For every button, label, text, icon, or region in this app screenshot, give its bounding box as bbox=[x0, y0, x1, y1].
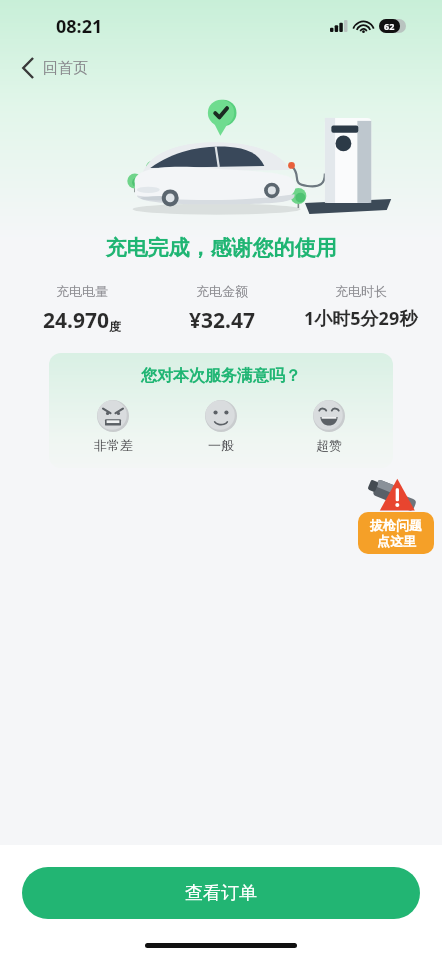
button[interactable]: 查看订单 bbox=[22, 867, 420, 919]
staticText: 08:21 bbox=[56, 14, 103, 39]
staticText: 查看订单 bbox=[185, 882, 257, 905]
staticText: 充电电量 bbox=[56, 283, 108, 299]
button[interactable]: 拔枪问题点这里 bbox=[358, 478, 434, 560]
staticText: 您对本次服务满意吗？ bbox=[141, 366, 301, 386]
button[interactable]: 一般 bbox=[167, 398, 275, 455]
staticText: 回首页 bbox=[43, 59, 88, 78]
staticText: 充电时长 bbox=[335, 283, 387, 299]
staticText: 24.970 bbox=[43, 306, 109, 335]
staticText: 充电完成，感谢您的使用 bbox=[0, 235, 442, 261]
button[interactable]: 非常差 bbox=[59, 398, 167, 455]
staticText: 1小时5分29秒 bbox=[304, 306, 418, 331]
staticText: 62 bbox=[384, 20, 395, 32]
staticText: 超赞 bbox=[316, 437, 342, 453]
button[interactable]: 超赞 bbox=[275, 398, 383, 455]
staticText: ¥32.47 bbox=[189, 306, 255, 335]
staticText: 一般 bbox=[208, 437, 234, 453]
button[interactable]: 回首页 bbox=[12, 52, 98, 84]
staticText: 非常差 bbox=[94, 437, 133, 453]
staticText: 度 bbox=[109, 319, 121, 334]
staticText: 拔枪问题 bbox=[370, 517, 422, 533]
staticText: 充电金额 bbox=[196, 283, 248, 299]
staticText: 点这里 bbox=[377, 533, 416, 549]
